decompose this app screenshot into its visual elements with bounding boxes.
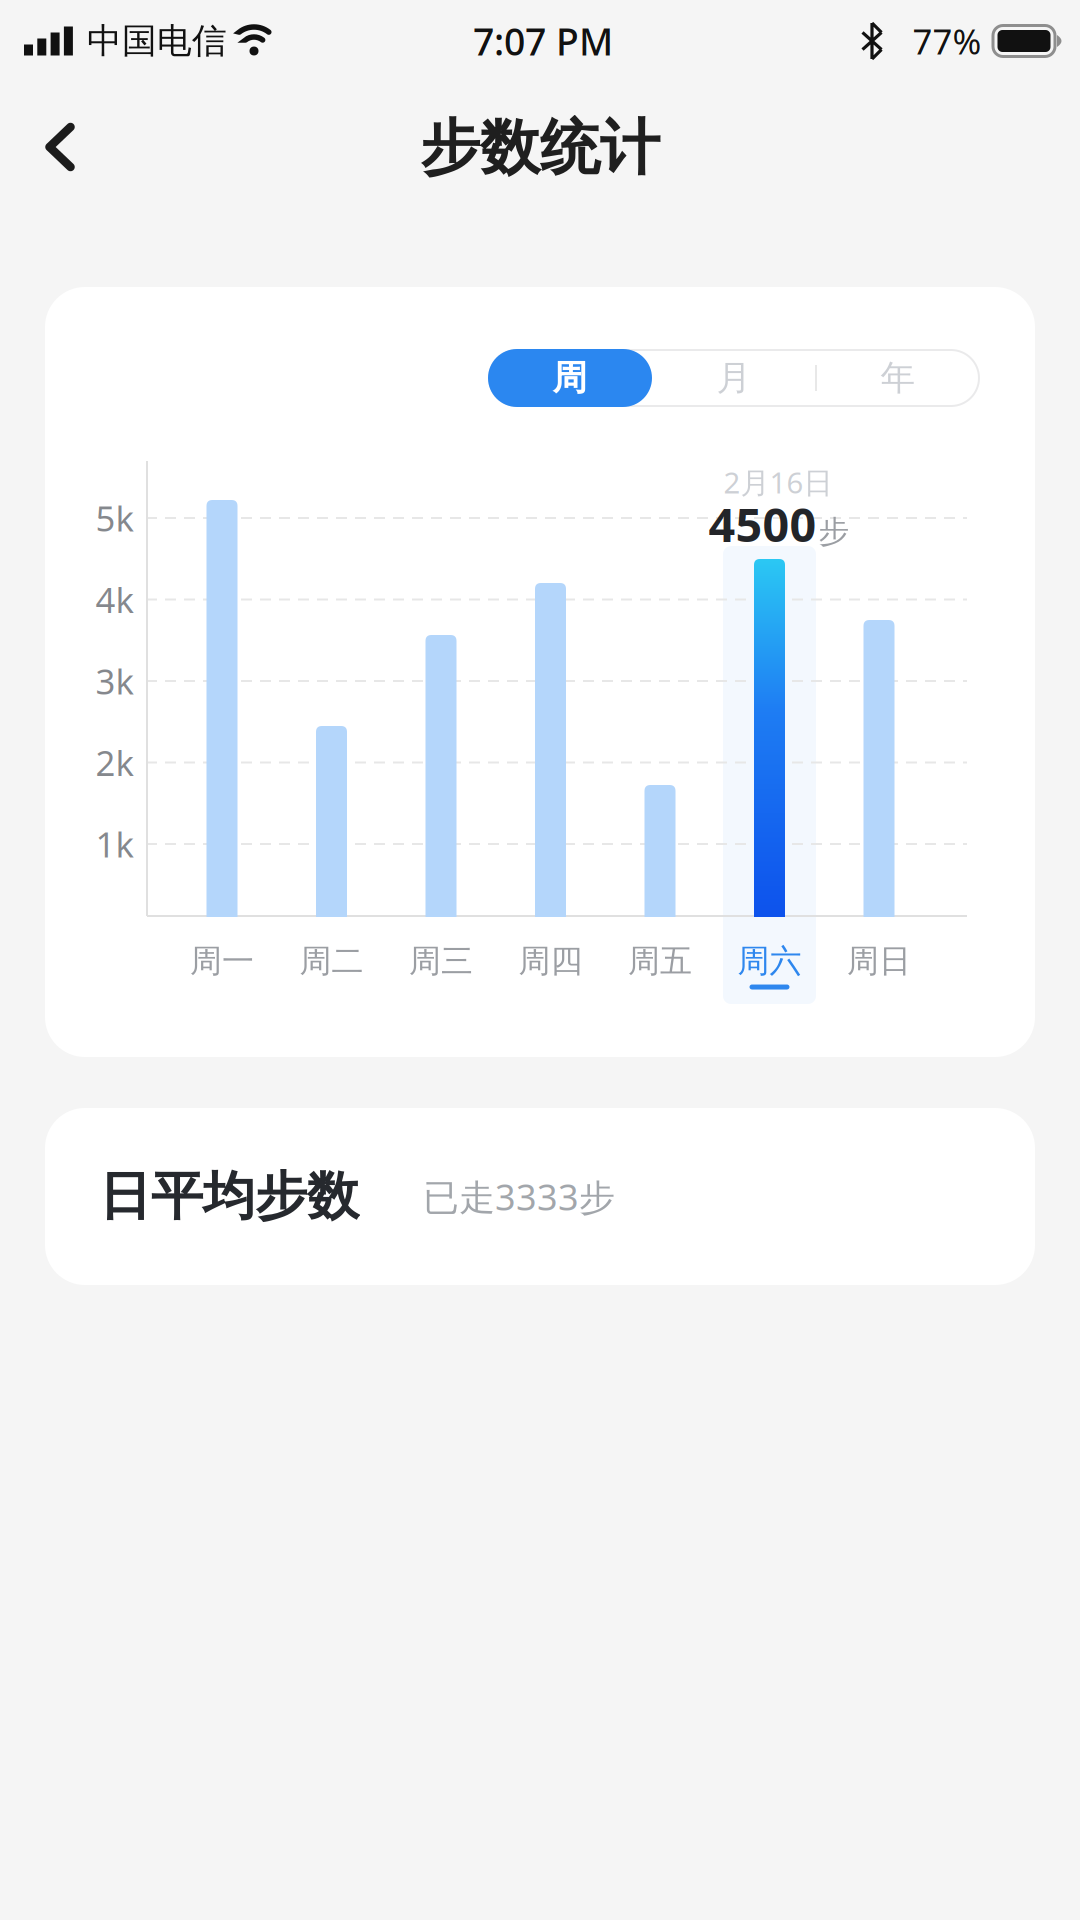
staticText: 4k <box>95 576 134 622</box>
staticText: 周 <box>552 357 587 399</box>
staticText: 77% <box>912 18 981 64</box>
button[interactable]: 周 <box>488 349 652 407</box>
staticText: 周四 <box>518 941 582 981</box>
staticText: 年 <box>880 357 915 399</box>
staticText: 步 <box>818 513 849 551</box>
button[interactable]: 返回 <box>33 115 86 179</box>
button[interactable]: 周三 <box>409 941 473 981</box>
staticText: 2月16日 <box>723 462 832 501</box>
staticText: 1k <box>95 821 134 867</box>
staticText: 5k <box>95 495 134 541</box>
staticText: 周五 <box>628 941 692 981</box>
button[interactable]: 年 <box>816 349 980 407</box>
staticText: 中国电信 <box>87 20 227 62</box>
staticText: 日平均步数 <box>99 1165 359 1228</box>
button[interactable]: 周一 <box>190 941 254 981</box>
staticText: 步数统计 <box>420 111 660 185</box>
staticText: 已走3333步 <box>423 1173 615 1220</box>
button[interactable]: 周四 <box>518 941 582 981</box>
staticText: 7:07 PM <box>473 16 613 66</box>
staticText: 4500 <box>708 493 816 555</box>
staticText: 2k <box>95 739 134 785</box>
staticText: 周日 <box>847 941 911 981</box>
button[interactable]: 月 <box>652 349 816 407</box>
staticText: 周二 <box>299 941 363 981</box>
button[interactable]: 周二 <box>299 941 363 981</box>
button[interactable]: 周六 <box>737 941 801 981</box>
staticText: 3k <box>95 658 134 704</box>
staticText: 周三 <box>409 941 473 981</box>
button[interactable]: 周五 <box>628 941 692 981</box>
button[interactable]: 周日 <box>847 941 911 981</box>
staticText: 周一 <box>190 941 254 981</box>
staticText: 周六 <box>737 941 801 981</box>
staticText: 月 <box>716 357 751 399</box>
